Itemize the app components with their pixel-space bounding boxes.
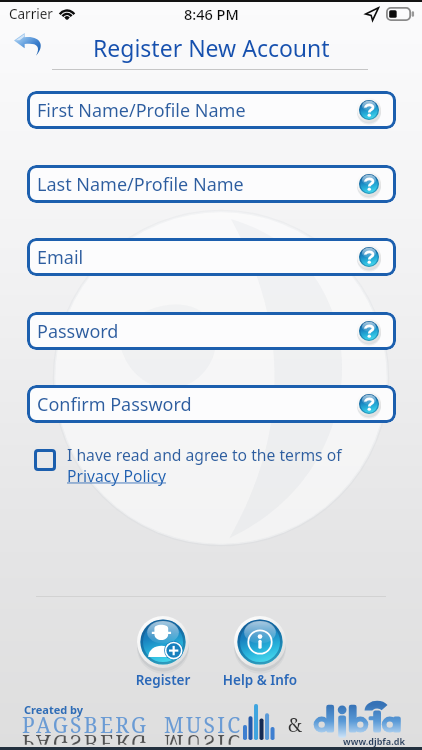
staticText: & bbox=[288, 712, 303, 738]
staticText: First Name/Profile Name bbox=[37, 98, 246, 123]
button[interactable]: Back bbox=[14, 32, 44, 56]
staticText: Last Name/Profile Name bbox=[37, 172, 244, 197]
staticText: Email bbox=[37, 245, 84, 270]
staticText: Carrier bbox=[9, 5, 53, 23]
button[interactable] bbox=[137, 616, 189, 668]
staticText: I have read and agree to the terms of bbox=[67, 444, 342, 465]
button[interactable]: First Name/Profile Name bbox=[27, 91, 396, 129]
button[interactable]: Help about Last Name/Profile Name bbox=[357, 172, 381, 196]
button[interactable]: Email bbox=[27, 238, 396, 276]
button[interactable]: I have read and agree to the terms of bbox=[34, 444, 374, 486]
staticText: www.djbfa.dk bbox=[343, 735, 406, 747]
button[interactable]: Help about First Name/Profile Name bbox=[357, 98, 381, 122]
staticText: 8:46 PM bbox=[184, 4, 239, 24]
staticText: Register bbox=[127, 671, 199, 689]
button[interactable]: Confirm Password bbox=[27, 385, 396, 423]
staticText: Register New Account bbox=[93, 32, 330, 63]
staticText: Help & Info bbox=[216, 671, 304, 689]
button[interactable] bbox=[234, 616, 286, 668]
staticText: Created by bbox=[24, 702, 84, 717]
button[interactable]: Help about Confirm Password bbox=[357, 392, 381, 416]
button[interactable]: Help about Password bbox=[357, 319, 381, 343]
button[interactable]: Last Name/Profile Name bbox=[27, 165, 396, 203]
staticText: Privacy Policy bbox=[67, 465, 167, 486]
button[interactable]: Help about Email bbox=[357, 245, 381, 269]
staticText: Confirm Password bbox=[37, 392, 192, 417]
button[interactable]: Password bbox=[27, 312, 396, 350]
staticText: Password bbox=[37, 319, 119, 344]
